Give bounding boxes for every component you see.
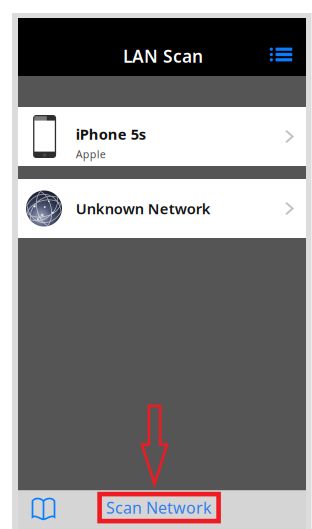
staticText: LAN Scan <box>123 44 203 67</box>
button[interactable]: Scan Network <box>100 494 219 521</box>
staticText: iPhone 5s <box>76 124 146 144</box>
staticText: Unknown Network <box>76 199 211 218</box>
button[interactable]: Unknown Network <box>18 179 306 238</box>
button[interactable]: Bookmarks <box>23 492 63 526</box>
staticText: Apple <box>76 147 106 161</box>
button[interactable]: Show device list <box>264 39 298 69</box>
button[interactable]: iPhone 5s <box>18 107 306 166</box>
staticText: Scan Network <box>106 497 212 518</box>
